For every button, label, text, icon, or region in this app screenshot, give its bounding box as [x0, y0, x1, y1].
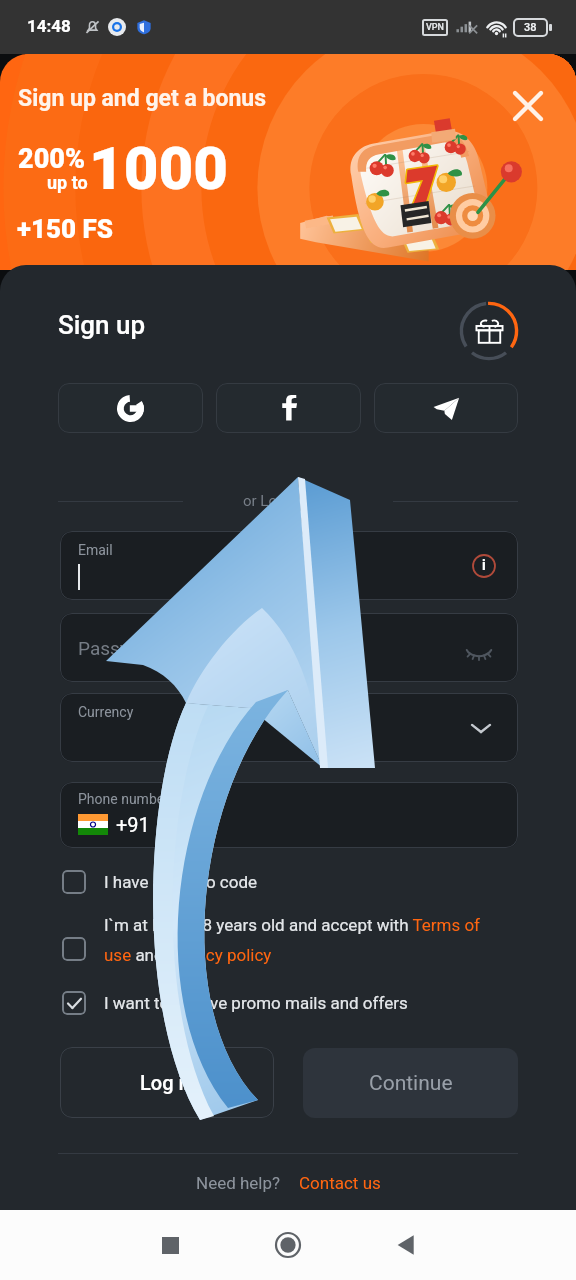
button[interactable]: Email — [60, 531, 518, 600]
staticText: 14:48 — [27, 16, 71, 36]
button[interactable]: Currency — [60, 693, 518, 762]
staticText: Phone number — [78, 791, 169, 807]
button[interactable]: Contact us — [299, 1173, 381, 1193]
staticText: up to — [47, 172, 88, 193]
staticText: VPN — [426, 22, 444, 33]
button[interactable]: Home — [229, 1210, 347, 1280]
button[interactable]: Log in — [60, 1047, 274, 1118]
staticText: Sign up — [58, 310, 146, 340]
staticText: Password — [78, 637, 162, 659]
staticText: Email — [78, 542, 113, 558]
staticText: Log in — [140, 1071, 195, 1094]
button[interactable]: Sign up with facebook — [216, 383, 361, 433]
staticText: Sign up and get a bonus — [18, 85, 266, 112]
button[interactable]: Sign up with telegram — [374, 383, 518, 433]
staticText: Continue — [369, 1071, 453, 1096]
staticText: Need help? — [196, 1173, 281, 1193]
button[interactable]: I want to receive promo mails and offers — [62, 981, 518, 1025]
button[interactable]: Back — [347, 1210, 465, 1280]
staticText: 38 — [524, 21, 537, 34]
staticText: Currency — [78, 704, 134, 720]
staticText: i — [482, 557, 486, 573]
button[interactable]: Sign up with google — [58, 383, 203, 433]
staticText: I have a promo code — [104, 872, 257, 892]
staticText: +150 FS — [17, 214, 114, 244]
staticText: +91 — [116, 813, 150, 836]
button[interactable]: Recents — [111, 1210, 229, 1280]
staticText: or Log in with — [243, 492, 333, 510]
staticText: I`m at least 18 years old and accept wit… — [104, 915, 500, 965]
staticText: Contact us — [299, 1173, 381, 1193]
button[interactable]: Close — [498, 76, 558, 136]
button[interactable]: Password — [60, 613, 518, 682]
button[interactable]: Continue — [303, 1048, 518, 1118]
button[interactable]: Bonus gift — [458, 300, 520, 362]
staticText: 1000 — [89, 133, 229, 203]
staticText: I want to receive promo mails and offers — [104, 993, 408, 1013]
button[interactable]: Phone number — [60, 782, 518, 848]
button[interactable]: I have a promo code — [62, 860, 518, 904]
staticText: 200% — [18, 143, 85, 175]
button[interactable]: I`m at least 18 years old and accept wit… — [62, 915, 518, 965]
